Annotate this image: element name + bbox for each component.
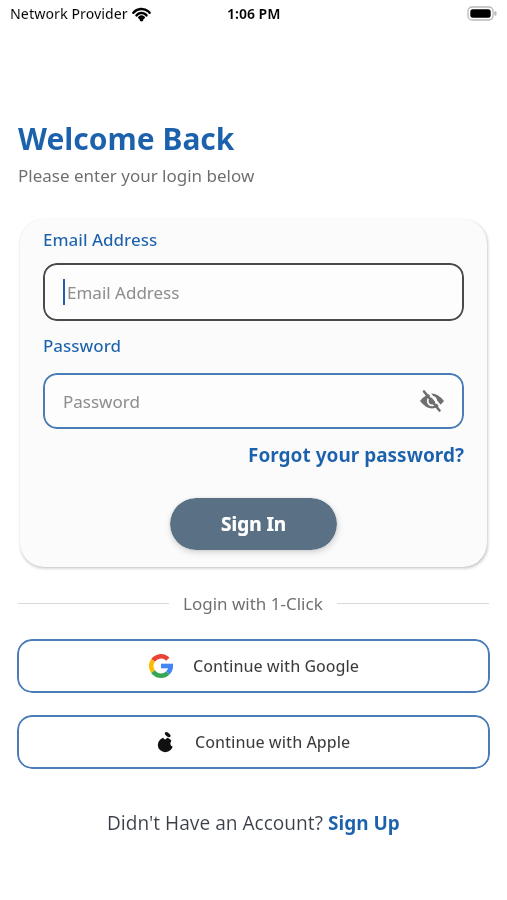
- button[interactable]: Password: [43, 373, 464, 429]
- staticText: Login with 1-Click: [183, 592, 323, 615]
- staticText: Continue with Google: [193, 655, 359, 677]
- button[interactable]: Didn't Have an Account?: [0, 810, 507, 836]
- staticText: Email Address: [43, 228, 158, 251]
- staticText: Email Address: [67, 281, 180, 304]
- staticText: Please enter your login below: [18, 164, 255, 187]
- button[interactable]: Email Address: [43, 263, 464, 321]
- button[interactable]: Sign In: [170, 498, 337, 550]
- button[interactable]: Continue with Apple: [17, 715, 490, 769]
- staticText: Sign Up: [328, 810, 400, 836]
- staticText: Password: [43, 334, 122, 357]
- button[interactable]: Forgot your password?: [248, 442, 464, 468]
- staticText: Welcome Back: [18, 118, 235, 159]
- staticText: Network Provider: [10, 4, 128, 23]
- staticText: 1:06 PM: [227, 4, 281, 23]
- staticText: Didn't Have an Account?: [107, 810, 328, 836]
- staticText: Password: [63, 390, 140, 413]
- staticText: Continue with Apple: [195, 731, 351, 753]
- button[interactable]: Continue with Google: [17, 639, 490, 693]
- staticText: Sign In: [221, 511, 287, 537]
